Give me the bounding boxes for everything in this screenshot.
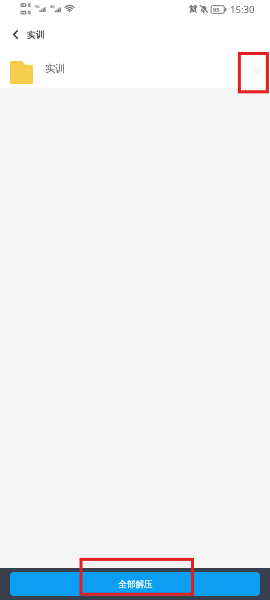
staticText: 全部解压 [118,579,153,590]
button[interactable]: 全部解压 [10,572,260,596]
staticText: 实训 [27,30,45,41]
staticText: 4G [50,4,55,9]
staticText: 95 [213,6,220,14]
staticText: 15:30 [230,3,255,16]
button[interactable]: 实训 [0,48,270,88]
staticText: 5G [35,4,40,9]
button[interactable]: Select item [244,58,270,84]
staticText: 实训 [45,62,66,75]
button[interactable]: Back [3,22,27,46]
